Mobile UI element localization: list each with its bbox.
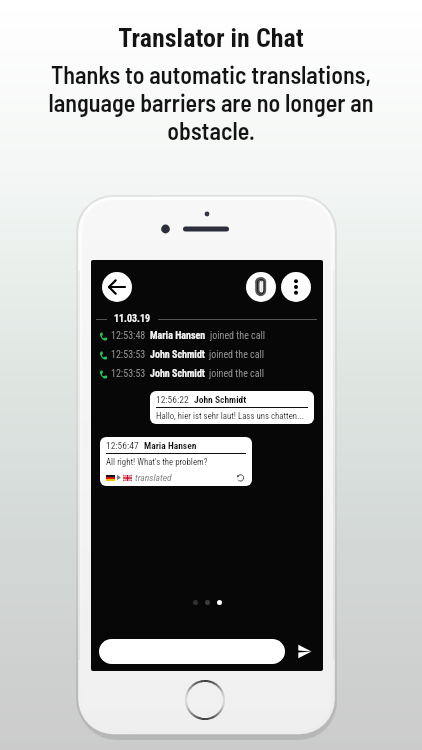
- button[interactable]: More options: [281, 272, 311, 302]
- staticText: 11.03.19: [114, 313, 151, 325]
- button[interactable]: Send: [292, 639, 317, 664]
- staticText: All right! What's the problem?: [106, 457, 208, 467]
- button[interactable]: Back: [102, 272, 132, 302]
- staticText: translated: [135, 472, 172, 483]
- button[interactable]: 12:56:22: [150, 391, 314, 424]
- button[interactable]: [99, 639, 285, 664]
- staticText: 12:53:48: [111, 330, 146, 342]
- staticText: Maria Hansen: [144, 440, 197, 451]
- staticText: Translator in Chat: [118, 23, 304, 53]
- staticText: Hallo, hier ist sehr laut! Lass uns chat…: [156, 411, 305, 421]
- staticText: joined the call: [209, 349, 265, 361]
- staticText: Thanks to automatic translations, langua…: [48, 60, 374, 145]
- staticText: John Schmidt: [150, 368, 205, 380]
- button[interactable]: 12:56:47: [100, 437, 252, 486]
- staticText: 12:56:22: [156, 394, 189, 405]
- staticText: John Schmidt: [150, 349, 205, 361]
- button[interactable]: Undo translation: [235, 472, 246, 483]
- staticText: joined the call: [209, 368, 265, 380]
- staticText: 12:53:53: [111, 349, 146, 361]
- button[interactable]: Attach file: [246, 272, 276, 302]
- staticText: 12:53:53: [111, 368, 146, 380]
- staticText: joined the call: [210, 330, 266, 342]
- staticText: John Schmidt: [194, 394, 247, 405]
- staticText: Maria Hansen: [150, 330, 206, 342]
- staticText: 12:56:47: [106, 440, 139, 451]
